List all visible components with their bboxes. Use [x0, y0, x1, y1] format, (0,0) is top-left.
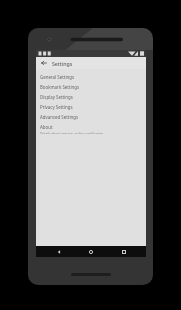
button[interactable]: Navigate up	[39, 58, 49, 68]
button[interactable]: Recent apps	[114, 246, 134, 257]
button[interactable]: Home	[81, 246, 101, 257]
staticText: General Settings	[40, 74, 75, 80]
button[interactable]: General Settings	[36, 72, 146, 82]
staticText: Privacy Settings	[40, 104, 73, 110]
button[interactable]: Back	[49, 246, 69, 257]
staticText: Bookmark Settings	[40, 84, 80, 90]
staticText: Display Settings	[40, 94, 73, 100]
button[interactable]: Bookmark Settings	[36, 82, 146, 92]
staticText: Settings	[52, 60, 73, 67]
staticText: About	[40, 124, 53, 130]
staticText: Details about version, author and licens…	[40, 131, 104, 134]
staticText: Advanced Settings	[40, 114, 79, 120]
button[interactable]: Privacy Settings	[36, 102, 146, 112]
button[interactable]: Advanced Settings	[36, 112, 146, 122]
button[interactable]: Display Settings	[36, 92, 146, 102]
button[interactable]: About	[36, 122, 146, 134]
